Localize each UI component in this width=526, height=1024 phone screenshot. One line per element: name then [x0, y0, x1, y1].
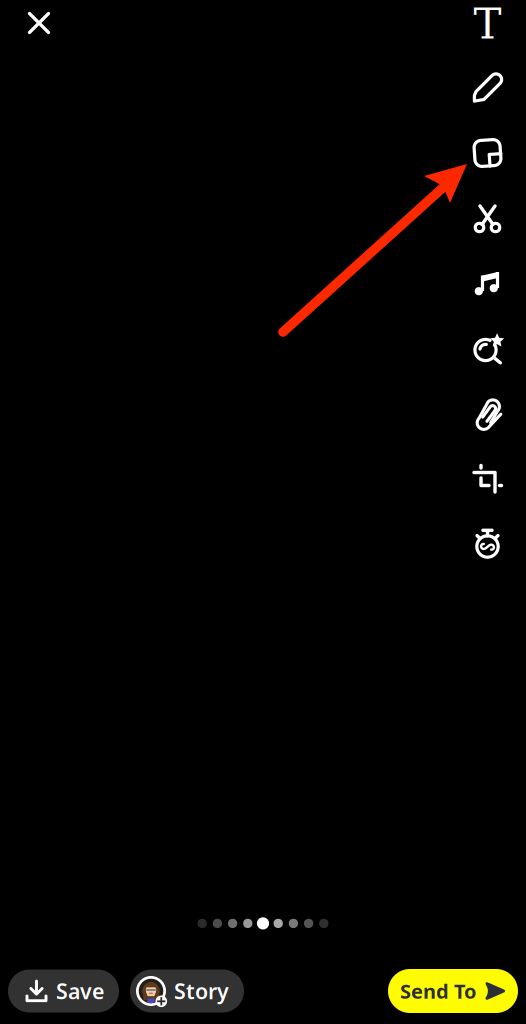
button[interactable]: Send To — [388, 969, 518, 1013]
button[interactable]: Close — [17, 1, 61, 45]
staticText: Send To — [400, 978, 477, 1004]
button[interactable]: Draw — [458, 57, 516, 119]
button[interactable]: Lenses — [458, 317, 516, 379]
staticText: Save — [56, 977, 104, 1005]
button[interactable]: Story — [130, 969, 244, 1012]
button[interactable]: Stickers — [458, 122, 516, 184]
button[interactable]: Music — [458, 252, 516, 314]
button[interactable]: Save — [8, 969, 119, 1012]
button[interactable]: Scissors — [458, 187, 516, 249]
button[interactable]: Attach link — [458, 382, 516, 444]
button[interactable]: Timer — [458, 512, 516, 574]
button[interactable]: Crop — [458, 447, 516, 509]
button[interactable]: Text — [458, 0, 516, 54]
staticText: Story — [174, 977, 229, 1005]
staticText: T — [473, 0, 501, 48]
